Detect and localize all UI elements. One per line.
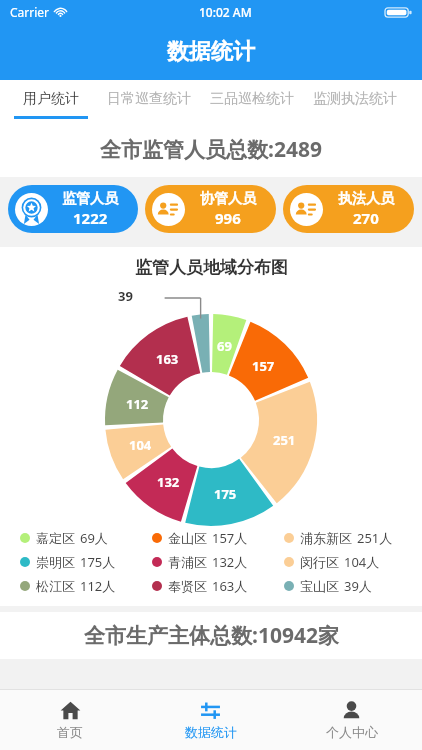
staticText: 104人 bbox=[344, 553, 380, 571]
staticText: 监测执法统计 bbox=[313, 90, 397, 108]
staticText: 嘉定区 bbox=[36, 530, 75, 546]
staticText: Carrier bbox=[10, 4, 50, 20]
staticText: 执法人员 bbox=[338, 190, 394, 208]
staticText: 39人 bbox=[344, 577, 372, 595]
button[interactable]: 执法人员 bbox=[283, 185, 414, 233]
button[interactable]: 协管人员 bbox=[145, 185, 276, 233]
button[interactable]: 三品巡检统计 bbox=[210, 80, 294, 122]
staticText: 数据统计 bbox=[167, 38, 255, 66]
staticText: 175 bbox=[214, 485, 237, 503]
staticText: 163 bbox=[156, 350, 179, 368]
staticText: 松江区 bbox=[36, 578, 75, 594]
button[interactable]: 首页 bbox=[0, 690, 140, 750]
button[interactable]: 日常巡查统计 bbox=[107, 80, 191, 122]
staticText: 270 bbox=[353, 208, 379, 228]
staticText: 全市监管人员总数:2489 bbox=[100, 135, 322, 164]
other: 数据统计 bbox=[200, 700, 221, 721]
staticText: 青浦区 bbox=[168, 554, 207, 570]
staticText: 112 bbox=[126, 395, 149, 413]
staticText: 1222 bbox=[73, 208, 108, 228]
staticText: 157 bbox=[252, 357, 275, 375]
staticText: 10:02 AM bbox=[199, 4, 252, 20]
staticText: 69人 bbox=[80, 529, 108, 547]
staticText: 157人 bbox=[212, 529, 248, 547]
staticText: 112人 bbox=[80, 577, 116, 595]
staticText: 996 bbox=[215, 208, 241, 228]
staticText: 163人 bbox=[212, 577, 248, 595]
staticText: 69 bbox=[217, 337, 232, 355]
staticText: 175人 bbox=[80, 553, 116, 571]
staticText: 132人 bbox=[212, 553, 248, 571]
staticText: 三品巡检统计 bbox=[210, 90, 294, 108]
staticText: 251 bbox=[273, 431, 296, 449]
staticText: 用户统计 bbox=[23, 90, 79, 108]
other: 首页 bbox=[60, 700, 81, 721]
staticText: 251人 bbox=[357, 529, 393, 547]
button[interactable]: 监管人员 bbox=[8, 185, 138, 233]
staticText: 闵行区 bbox=[300, 554, 339, 570]
button[interactable]: 监测执法统计 bbox=[313, 80, 397, 122]
staticText: 数据统计 bbox=[185, 724, 237, 740]
staticText: 104 bbox=[129, 436, 152, 454]
staticText: 宝山区 bbox=[300, 578, 339, 594]
staticText: 监管人员 bbox=[62, 190, 118, 208]
staticText: 首页 bbox=[57, 724, 83, 740]
staticText: 监管人员地域分布图 bbox=[135, 257, 288, 278]
staticText: 132 bbox=[157, 473, 180, 491]
other: 个人中心 bbox=[341, 700, 362, 721]
staticText: 金山区 bbox=[168, 530, 207, 546]
button[interactable]: 个人中心 bbox=[281, 690, 422, 750]
staticText: 奉贤区 bbox=[168, 578, 207, 594]
staticText: 协管人员 bbox=[200, 190, 256, 208]
button[interactable]: 用户统计 bbox=[14, 80, 88, 122]
staticText: 崇明区 bbox=[36, 554, 75, 570]
staticText: 浦东新区 bbox=[300, 530, 352, 546]
staticText: 全市生产主体总数:10942家 bbox=[84, 621, 339, 650]
staticText: 个人中心 bbox=[326, 724, 378, 740]
button[interactable]: 数据统计 bbox=[140, 690, 281, 750]
staticText: 日常巡查统计 bbox=[107, 90, 191, 108]
staticText: 39 bbox=[118, 287, 133, 305]
